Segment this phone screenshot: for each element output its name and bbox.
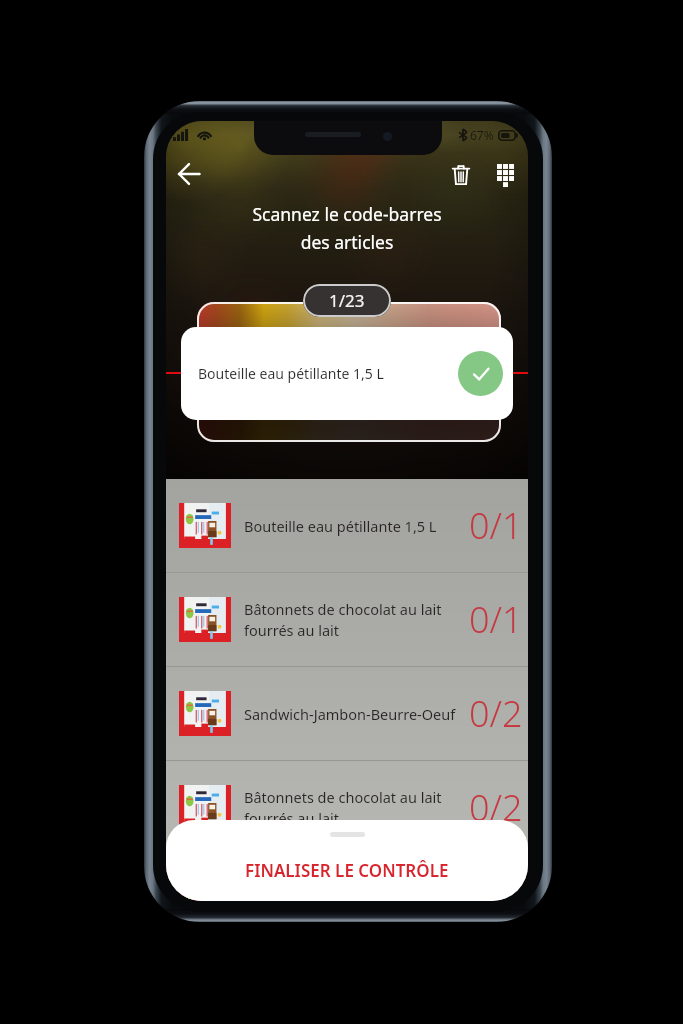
staticText: Scannez le code-barres des articles <box>166 202 528 254</box>
staticText: Bouteille eau pétillante 1,5 L <box>198 364 458 383</box>
button[interactable]: Bâtonnets de chocolat au lait fourrés au… <box>166 573 528 667</box>
button[interactable]: Bouteille eau pétillante 1,5 L <box>166 479 528 573</box>
staticText: 0/2 <box>469 783 523 832</box>
staticText: 0/2 <box>469 689 523 738</box>
button[interactable]: Sandwich-Jambon-Beurre-Oeuf <box>166 855 528 901</box>
staticText: Bâtonnets de chocolat au lait fourrés au… <box>244 599 469 641</box>
staticText: 0/1 <box>469 501 523 550</box>
button[interactable]: Enter code manually <box>484 153 526 195</box>
staticText: FINALISER LE CONTRÔLE <box>245 859 449 882</box>
staticText: 0/3 <box>469 877 523 901</box>
button[interactable]: FINALISER LE CONTRÔLE <box>166 820 528 901</box>
button[interactable]: Bâtonnets de chocolat au lait fourrés au… <box>166 761 528 855</box>
button[interactable]: Back <box>168 153 210 195</box>
button[interactable]: 1/23 <box>303 284 391 317</box>
staticText: 0/1 <box>469 595 523 644</box>
button[interactable]: Sandwich-Jambon-Beurre-Oeuf <box>166 667 528 761</box>
staticText: Bâtonnets de chocolat au lait fourrés au… <box>244 787 469 829</box>
staticText: 1/23 <box>329 289 365 312</box>
button[interactable]: Bouteille eau pétillante 1,5 L <box>181 327 513 420</box>
staticText: Sandwich-Jambon-Beurre-Oeuf <box>244 704 469 724</box>
staticText: 67% <box>470 127 494 143</box>
staticText: Bouteille eau pétillante 1,5 L <box>244 516 469 536</box>
button[interactable]: Delete <box>440 153 482 195</box>
